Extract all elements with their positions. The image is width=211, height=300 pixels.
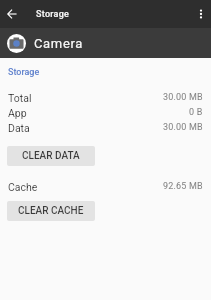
staticText: Storage [36,9,70,20]
button[interactable]: CLEAR CACHE [7,201,95,221]
button[interactable]: Navigate up [0,2,24,26]
staticText: App [8,107,27,119]
staticText: 0 B [189,107,203,118]
staticText: Data [8,122,30,134]
staticText: 92.65 MB [163,181,203,192]
staticText: Cache [8,181,38,193]
staticText: Camera [34,36,83,51]
button[interactable]: CLEAR DATA [7,146,95,166]
staticText: Storage [8,67,40,78]
staticText: CLEAR DATA [22,150,80,162]
staticText: 30.00 MB [163,92,203,103]
staticText: Total [8,92,32,104]
staticText: 30.00 MB [163,122,203,133]
button[interactable]: More options [190,3,211,25]
staticText: CLEAR CACHE [18,205,84,217]
